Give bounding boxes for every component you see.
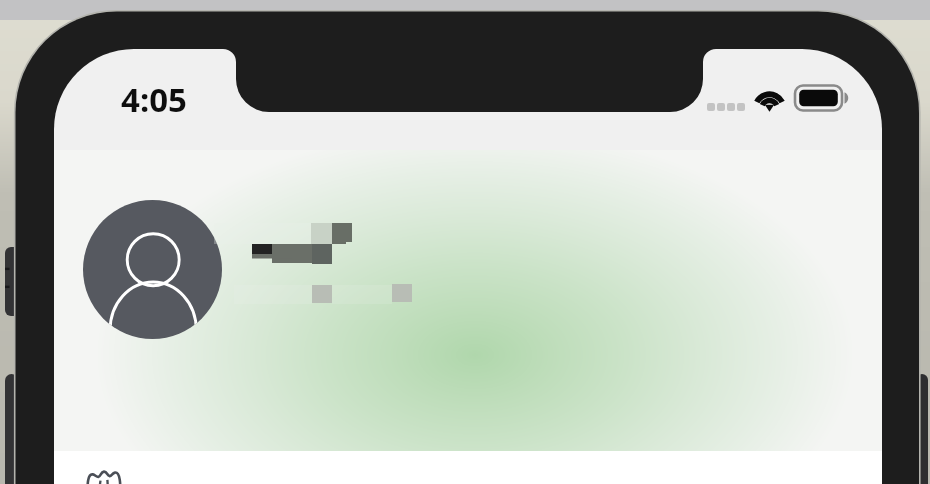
staticText: 4:05: [121, 77, 187, 122]
button[interactable]: Profile avatar: [83, 200, 222, 339]
